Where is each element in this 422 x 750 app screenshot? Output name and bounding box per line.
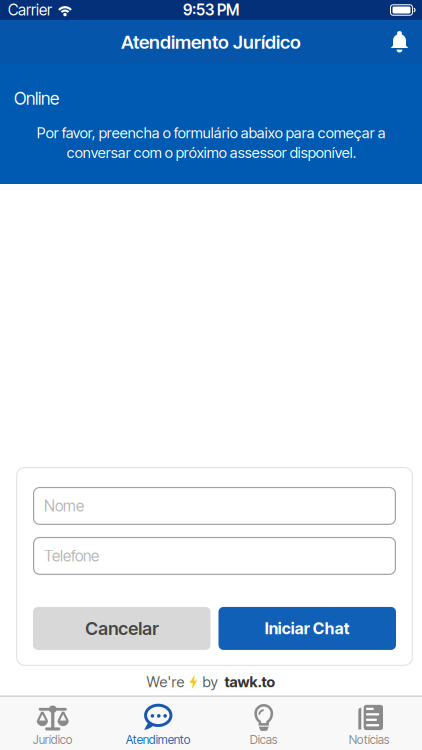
button[interactable]: Cancelar: [33, 607, 210, 650]
button[interactable]: Atendimento: [105, 704, 211, 747]
button[interactable]: Jurídico: [0, 704, 105, 747]
staticText: Telefone: [44, 547, 99, 565]
staticText: Atendimento Jurídico: [121, 31, 301, 53]
button[interactable]: We're: [146, 666, 275, 696]
staticText: Cancelar: [85, 617, 158, 639]
button[interactable]: Notícias: [316, 704, 422, 747]
staticText: Atendimento: [126, 732, 191, 747]
staticText: Online: [14, 88, 59, 109]
staticText: Por favor, preencha o formulário abaixo …: [36, 124, 385, 161]
button[interactable]: Notifications: [390, 31, 422, 53]
staticText: 9:53 PM: [183, 1, 239, 19]
staticText: Jurídico: [33, 732, 73, 747]
button[interactable]: Dicas: [211, 704, 316, 747]
staticText: Carrier: [8, 1, 52, 19]
staticText: by: [202, 673, 220, 691]
staticText: We're: [146, 673, 184, 691]
staticText: Dicas: [250, 732, 278, 747]
staticText: tawk.to: [224, 673, 275, 691]
button[interactable]: Nome: [33, 487, 396, 525]
staticText: Iniciar Chat: [265, 619, 350, 638]
staticText: Nome: [44, 497, 84, 515]
button[interactable]: Iniciar Chat: [218, 607, 396, 650]
button[interactable]: Telefone: [33, 537, 396, 575]
staticText: Notícias: [349, 732, 390, 747]
